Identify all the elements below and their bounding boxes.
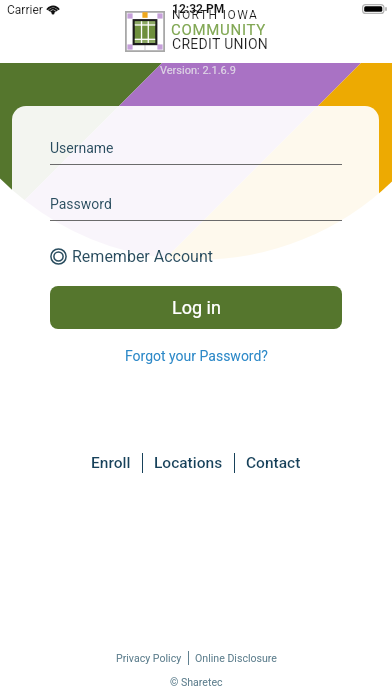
button[interactable]: Privacy Policy (116, 652, 182, 664)
button[interactable]: Forgot your Password? (50, 347, 342, 365)
button[interactable]: Online Disclosure (195, 652, 277, 664)
button[interactable]: Contact (246, 454, 301, 472)
staticText: Enroll (91, 454, 131, 472)
staticText: Forgot your Password? (125, 348, 268, 364)
staticText: NORTH IOWA (172, 8, 259, 22)
staticText: Version: 2.1.6.9 (160, 64, 236, 77)
staticText: Carrier (7, 3, 43, 17)
button[interactable]: Remember Account (47, 243, 213, 269)
staticText: Remember Account (72, 247, 213, 266)
staticText: Contact (246, 454, 301, 472)
staticText: COMMUNITY (171, 21, 266, 39)
button[interactable]: Enroll (91, 454, 131, 472)
staticText: Log in (172, 297, 221, 318)
staticText: © Sharetec (170, 676, 223, 688)
staticText: CREDIT UNION (172, 36, 269, 52)
button[interactable]: Locations (154, 454, 223, 472)
other: Battery full (362, 4, 387, 14)
staticText: Username (50, 140, 114, 156)
staticText: 12:32 PM (172, 2, 225, 16)
staticText: Locations (154, 454, 223, 472)
button[interactable]: Log in (50, 286, 342, 329)
staticText: Password (50, 196, 112, 212)
other: Wi-Fi signal (46, 4, 60, 14)
